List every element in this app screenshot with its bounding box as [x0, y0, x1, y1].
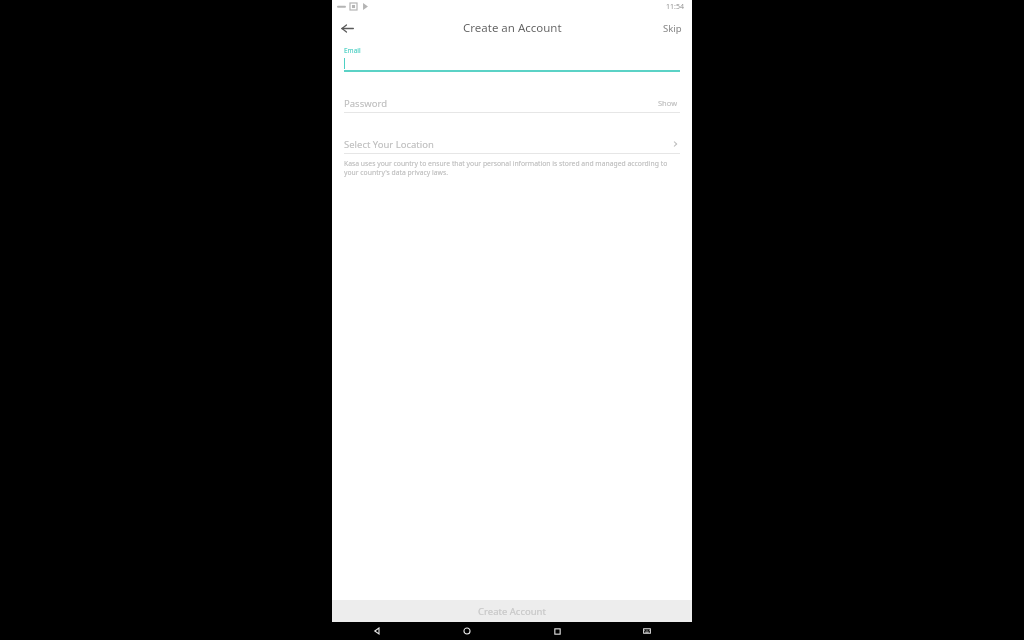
button[interactable]: Select Your Location — [344, 137, 680, 151]
staticText: Show — [658, 98, 678, 108]
staticText: 11:54 — [666, 2, 684, 12]
button[interactable]: Switch keyboard — [602, 622, 692, 640]
button[interactable] — [344, 56, 680, 70]
staticText: Email — [344, 46, 361, 55]
button[interactable]: Show — [656, 97, 680, 109]
staticText: Kasa uses your country to ensure that yo… — [344, 159, 680, 177]
button[interactable]: Password — [344, 96, 680, 110]
staticText: Skip — [663, 22, 682, 35]
button[interactable]: Back — [332, 13, 362, 43]
button[interactable]: Skip — [653, 13, 692, 43]
button[interactable]: Create Account — [332, 600, 692, 622]
staticText: Create an Account — [463, 20, 562, 36]
staticText: Select Your Location — [344, 138, 434, 151]
staticText: Password — [344, 97, 387, 110]
button[interactable]: Back — [332, 622, 422, 640]
button[interactable]: Home — [422, 622, 512, 640]
button[interactable]: Recent apps — [512, 622, 602, 640]
staticText: Create Account — [478, 605, 546, 618]
